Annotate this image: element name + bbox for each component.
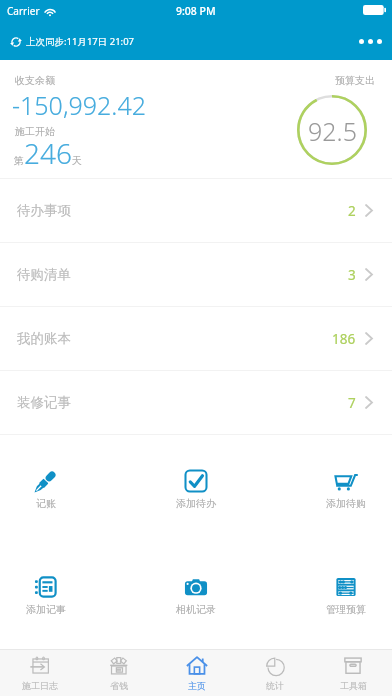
button[interactable]: 装修记事 <box>0 371 392 434</box>
button[interactable]: 添加待购 <box>323 469 369 510</box>
staticText: Carrier <box>7 4 40 18</box>
staticText: 统计 <box>266 680 284 691</box>
button[interactable]: 待办事项 <box>0 179 392 242</box>
staticText: 上次同步:11月17日 21:07 <box>26 35 135 48</box>
staticText: 186 <box>332 330 356 348</box>
staticText: 工具箱 <box>340 680 367 691</box>
button[interactable]: 施工日志 <box>0 650 79 696</box>
button[interactable]: 添加记事 <box>23 575 69 616</box>
staticText: 9:08 PM <box>176 4 216 18</box>
staticText: 2 <box>348 202 356 220</box>
button[interactable]: 主页 <box>158 650 236 696</box>
staticText: 记账 <box>36 497 56 510</box>
staticText: 3 <box>348 266 356 284</box>
staticText: 施工开始 <box>15 125 55 138</box>
staticText: 天 <box>72 154 82 167</box>
staticText: 7 <box>348 394 356 412</box>
button[interactable]: More options <box>359 39 382 44</box>
staticText: 添加记事 <box>26 603 66 616</box>
button[interactable]: 工具箱 <box>314 650 392 696</box>
button[interactable]: 相机记录 <box>173 575 219 616</box>
staticText: 收支余额 <box>15 74 55 87</box>
staticText: 待办事项 <box>17 202 71 219</box>
button[interactable]: 我的账本 <box>0 307 392 370</box>
staticText: 省钱 <box>110 680 128 691</box>
staticText: 添加待办 <box>176 497 216 510</box>
button[interactable]: 记账 <box>23 469 69 510</box>
staticText: 我的账本 <box>17 330 71 347</box>
staticText: 待购清单 <box>17 266 71 283</box>
staticText: 添加待购 <box>326 497 366 510</box>
button[interactable]: 省钱 <box>79 650 158 696</box>
staticText: 管理预算 <box>326 603 366 616</box>
staticText: 相机记录 <box>176 603 216 616</box>
button[interactable]: 添加待办 <box>173 469 219 510</box>
staticText: 第 <box>14 154 24 167</box>
staticText: 装修记事 <box>17 394 71 411</box>
staticText: 施工日志 <box>22 680 58 691</box>
staticText: -150,992.42 <box>12 88 146 122</box>
button[interactable]: 管理预算 <box>323 575 369 616</box>
staticText: 246 <box>24 134 72 172</box>
staticText: 主页 <box>188 680 206 691</box>
staticText: 预算支出 <box>335 74 375 87</box>
button[interactable]: 统计 <box>236 650 314 696</box>
staticText: 92.5 <box>308 114 357 148</box>
button[interactable]: 待购清单 <box>0 243 392 306</box>
